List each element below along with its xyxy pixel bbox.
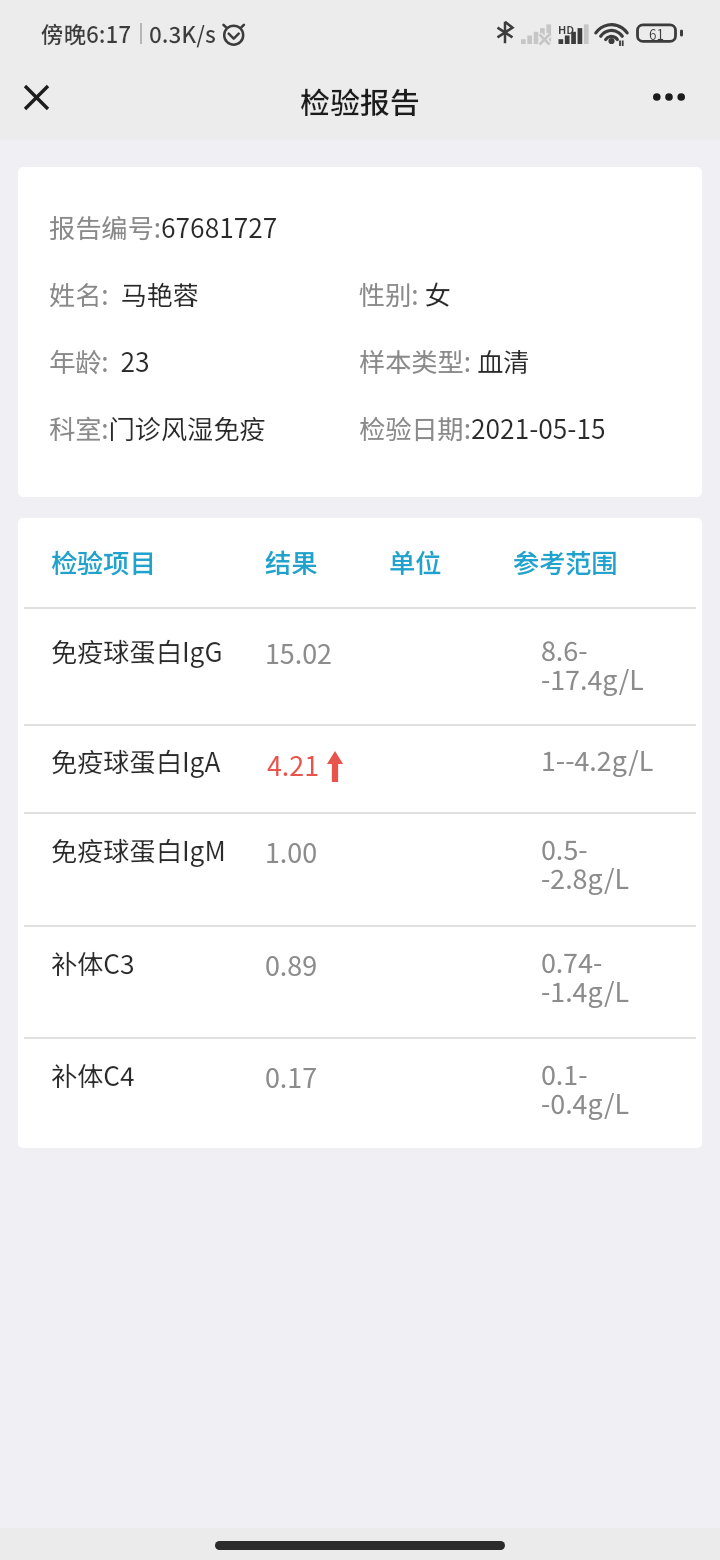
staticText: 4.21 bbox=[267, 745, 320, 784]
staticText: HD bbox=[558, 21, 575, 37]
staticText: 1.00 bbox=[265, 832, 318, 871]
button[interactable]: More options bbox=[633, 62, 705, 132]
staticText: 姓名: 马艳蓉 bbox=[49, 275, 359, 313]
staticText: 0.1- -0.4g/L bbox=[541, 1054, 630, 1122]
staticText: 检验项目 bbox=[51, 543, 265, 581]
button[interactable]: 免疫球蛋白IgA bbox=[18, 726, 702, 812]
staticText: 0.3K/s bbox=[149, 17, 216, 50]
button[interactable]: 补体C4 bbox=[18, 1039, 702, 1148]
staticText: 免疫球蛋白IgG bbox=[51, 632, 265, 670]
staticText: 单位 bbox=[389, 543, 513, 581]
button[interactable]: 免疫球蛋白IgG bbox=[18, 609, 702, 724]
staticText: 免疫球蛋白IgA bbox=[51, 742, 265, 780]
button[interactable]: Close bbox=[0, 62, 72, 132]
staticText: 0.5- -2.8g/L bbox=[541, 829, 630, 897]
staticText: 1--4.2g/L bbox=[541, 740, 654, 779]
staticText: 0.74- -1.4g/L bbox=[541, 942, 630, 1010]
staticText: 免疫球蛋白IgM bbox=[51, 831, 265, 869]
staticText: 结果 bbox=[265, 543, 389, 581]
button[interactable]: 免疫球蛋白IgM bbox=[18, 814, 702, 925]
staticText: 检验报告 bbox=[300, 79, 420, 122]
staticText: 补体C3 bbox=[51, 944, 265, 982]
staticText: 0.89 bbox=[265, 945, 318, 984]
staticText: 15.02 bbox=[265, 633, 332, 672]
staticText: 检验日期:2021-05-15 bbox=[359, 409, 606, 447]
staticText: 61 bbox=[649, 24, 664, 44]
staticText: 样本类型: 血清 bbox=[359, 342, 530, 380]
staticText: 性别: 女 bbox=[359, 275, 451, 313]
staticText: 8.6- -17.4g/L bbox=[541, 630, 644, 698]
button[interactable]: 补体C3 bbox=[18, 927, 702, 1037]
staticText: 参考范围 bbox=[513, 543, 618, 581]
staticText: 科室:门诊风湿免疫 bbox=[49, 409, 359, 447]
staticText: 年龄: 23 bbox=[49, 342, 359, 380]
staticText: 傍晚6:17 bbox=[41, 17, 132, 50]
staticText: 补体C4 bbox=[51, 1056, 265, 1094]
staticText: 0.17 bbox=[265, 1057, 318, 1096]
staticText: 报告编号:67681727 bbox=[49, 208, 278, 246]
